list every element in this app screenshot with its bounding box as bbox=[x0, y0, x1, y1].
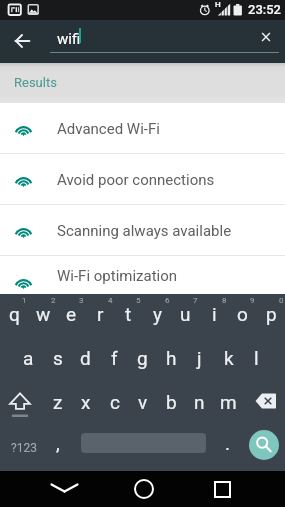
staticText: m bbox=[220, 391, 237, 413]
staticText: 8 bbox=[222, 296, 227, 305]
button[interactable]: 6 bbox=[143, 294, 172, 336]
button[interactable]: 3 bbox=[57, 294, 86, 336]
button[interactable]: c bbox=[100, 380, 129, 424]
button[interactable]: m bbox=[214, 380, 243, 424]
button[interactable]: a bbox=[14, 336, 43, 380]
button[interactable]: 2 bbox=[29, 294, 58, 336]
staticText: l bbox=[254, 347, 259, 369]
button[interactable]: Wi-Fi optimization bbox=[0, 256, 285, 294]
staticText: Scanning always available bbox=[57, 222, 232, 240]
button[interactable]: 8 bbox=[200, 294, 229, 336]
staticText: v bbox=[138, 391, 148, 413]
staticText: e bbox=[66, 303, 77, 325]
staticText: 4 bbox=[108, 296, 113, 305]
staticText: c bbox=[110, 391, 120, 413]
staticText: ?123 bbox=[11, 441, 37, 455]
button[interactable]: j bbox=[185, 336, 214, 380]
button[interactable]: 4 bbox=[86, 294, 115, 336]
button[interactable]: Recent apps bbox=[159, 471, 285, 507]
staticText: H bbox=[215, 0, 221, 9]
staticText: 3 bbox=[79, 296, 84, 305]
button[interactable]: 9 bbox=[228, 294, 257, 336]
button[interactable]: . bbox=[215, 424, 241, 470]
staticText: y bbox=[153, 303, 162, 325]
staticText: b bbox=[166, 391, 177, 413]
button[interactable]: l bbox=[242, 336, 271, 380]
staticText: Avoid poor connections bbox=[57, 171, 215, 189]
button[interactable]: g bbox=[128, 336, 157, 380]
staticText: w bbox=[36, 303, 51, 325]
staticText: 5 bbox=[136, 296, 141, 305]
staticText: . bbox=[225, 432, 231, 454]
staticText: q bbox=[9, 303, 20, 325]
button[interactable]: Delete bbox=[243, 380, 285, 424]
staticText: u bbox=[180, 303, 191, 325]
button[interactable]: n bbox=[185, 380, 214, 424]
staticText: r bbox=[97, 303, 104, 325]
staticText: j bbox=[197, 347, 202, 369]
button[interactable]: Home bbox=[128, 471, 159, 507]
staticText: Wi-Fi optimization bbox=[57, 267, 178, 285]
staticText: 2 bbox=[51, 296, 56, 305]
button[interactable]: Shift bbox=[0, 380, 42, 424]
staticText: s bbox=[53, 347, 63, 369]
staticText: a bbox=[23, 347, 34, 369]
button[interactable]: Back bbox=[0, 471, 128, 507]
staticText: Advanced Wi-Fi bbox=[57, 120, 160, 138]
button[interactable]: ?123 bbox=[0, 424, 45, 470]
button[interactable]: x bbox=[71, 380, 100, 424]
staticText: f bbox=[111, 347, 118, 369]
staticText: g bbox=[137, 347, 148, 369]
staticText: 6 bbox=[165, 296, 170, 305]
staticText: x bbox=[81, 391, 91, 413]
button[interactable]: s bbox=[43, 336, 72, 380]
staticText: 9 bbox=[250, 296, 255, 305]
staticText: d bbox=[80, 347, 91, 369]
staticText: p bbox=[266, 303, 277, 325]
staticText: 1 bbox=[22, 296, 27, 305]
staticText: n bbox=[194, 391, 205, 413]
button[interactable]: , bbox=[45, 424, 71, 470]
button[interactable]: d bbox=[71, 336, 100, 380]
button[interactable]: 7 bbox=[171, 294, 200, 336]
staticText: i bbox=[212, 303, 217, 325]
button[interactable]: k bbox=[214, 336, 243, 380]
button[interactable]: 0 bbox=[257, 294, 285, 336]
staticText: t bbox=[125, 303, 132, 325]
button[interactable]: 5 bbox=[114, 294, 143, 336]
staticText: , bbox=[56, 432, 60, 454]
staticText: 23:52 bbox=[248, 2, 281, 17]
button[interactable]: 1 bbox=[0, 294, 29, 336]
button[interactable]: v bbox=[128, 380, 157, 424]
staticText: 0 bbox=[279, 296, 284, 305]
button[interactable]: Avoid poor connections bbox=[0, 154, 285, 205]
button[interactable]: Navigate up bbox=[2, 21, 42, 61]
staticText: o bbox=[237, 303, 248, 325]
staticText: z bbox=[53, 391, 63, 413]
button[interactable]: z bbox=[43, 380, 72, 424]
staticText: wifi bbox=[57, 30, 81, 48]
staticText: k bbox=[224, 347, 234, 369]
button[interactable]: b bbox=[157, 380, 186, 424]
button[interactable]: Clear query bbox=[249, 20, 283, 54]
button[interactable]: Search bbox=[249, 430, 279, 460]
button[interactable]: h bbox=[157, 336, 186, 380]
staticText: h bbox=[166, 347, 177, 369]
staticText: 7 bbox=[193, 296, 198, 305]
button[interactable]: Scanning always available bbox=[0, 205, 285, 256]
button[interactable]: Advanced Wi-Fi bbox=[0, 103, 285, 154]
staticText: Results bbox=[14, 75, 57, 90]
button[interactable]: f bbox=[100, 336, 129, 380]
